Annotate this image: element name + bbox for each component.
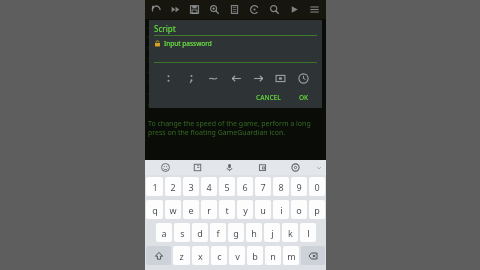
button[interactable]: 5: [219, 177, 235, 196]
button[interactable]: Menu: [304, 0, 324, 19]
staticText: 3: [188, 181, 194, 193]
staticText: T: [148, 78, 152, 86]
staticText: 8: [278, 181, 284, 193]
button[interactable]: h: [246, 223, 262, 242]
button[interactable]: e: [183, 200, 199, 219]
staticText: 6: [242, 181, 248, 193]
button[interactable]: Left: [228, 70, 244, 86]
staticText: u: [260, 204, 266, 216]
button[interactable]: List: [224, 0, 244, 19]
staticText: To change the speed of the game, perform…: [148, 119, 326, 137]
button[interactable]: x: [192, 246, 209, 265]
staticText: V: [148, 34, 152, 42]
button[interactable]: c: [211, 246, 227, 265]
button[interactable]: w: [165, 200, 181, 219]
button[interactable]: Stickers: [181, 160, 213, 175]
staticText: j: [271, 227, 274, 239]
button[interactable]: n: [265, 246, 281, 265]
button[interactable]: Colon: [160, 70, 176, 86]
staticText: l: [307, 227, 310, 239]
button[interactable]: 2: [165, 177, 181, 196]
button[interactable]: p: [309, 200, 325, 219]
button[interactable]: More: [312, 160, 326, 175]
button[interactable]: v: [229, 246, 245, 265]
button[interactable]: Fast forward: [166, 0, 185, 19]
staticText: s: [180, 227, 185, 239]
button[interactable]: f: [210, 223, 226, 242]
button[interactable]: CANCEL: [252, 92, 285, 103]
button[interactable]: r: [201, 200, 217, 219]
button[interactable]: k: [282, 223, 298, 242]
button[interactable]: 3: [183, 177, 199, 196]
staticText: 4: [206, 181, 212, 193]
button[interactable]: 1: [146, 177, 163, 196]
staticText: c: [217, 250, 222, 262]
staticText: w: [169, 204, 177, 216]
button[interactable]: z: [173, 246, 190, 265]
button[interactable]: Emoji: [149, 160, 181, 175]
button[interactable]: Settings: [279, 160, 312, 175]
staticText: 1: [152, 181, 158, 193]
button[interactable]: t: [219, 200, 235, 219]
staticText: e: [188, 204, 194, 216]
staticText: q: [152, 204, 158, 216]
button[interactable]: Semicolon: [183, 70, 199, 86]
button[interactable]: g: [228, 223, 244, 242]
button[interactable]: y: [237, 200, 253, 219]
staticText: o: [296, 204, 302, 216]
staticText: A: [148, 100, 152, 108]
button[interactable]: Save: [185, 0, 204, 19]
button[interactable]: Backspace: [301, 246, 325, 265]
button[interactable]: 8: [273, 177, 289, 196]
button[interactable]: d: [192, 223, 208, 242]
staticText: h: [251, 227, 257, 239]
button[interactable]: a: [156, 223, 172, 242]
staticText: 9: [296, 181, 302, 193]
button[interactable]: History: [295, 70, 311, 86]
button[interactable]: Refresh: [244, 0, 264, 19]
button[interactable]: Clipboard: [246, 160, 279, 175]
button[interactable]: 7: [255, 177, 271, 196]
button[interactable]: Select: [272, 70, 288, 86]
button[interactable]: j: [264, 223, 280, 242]
button[interactable]: b: [247, 246, 263, 265]
staticText: OK: [299, 93, 309, 102]
staticText: V: [148, 45, 152, 53]
staticText: A: [148, 23, 152, 31]
button[interactable]: o: [291, 200, 307, 219]
staticText: i: [280, 204, 283, 216]
button[interactable]: Right: [250, 70, 266, 86]
staticText: Script: [154, 23, 176, 34]
button[interactable]: Search: [264, 0, 284, 19]
button[interactable]: Shift: [146, 246, 171, 265]
staticText: g: [233, 227, 239, 239]
staticText: a: [161, 227, 167, 239]
button[interactable]: l: [300, 223, 316, 242]
button[interactable]: 9: [291, 177, 307, 196]
button[interactable]: u: [255, 200, 271, 219]
staticText: k: [288, 227, 293, 239]
button[interactable]: Voice input: [213, 160, 246, 175]
button[interactable]: Undo: [147, 0, 166, 19]
button[interactable]: m: [283, 246, 299, 265]
button[interactable]: Tilde: [205, 70, 221, 86]
button[interactable]: i: [273, 200, 289, 219]
staticText: 0: [314, 181, 320, 193]
button[interactable]: s: [174, 223, 190, 242]
button[interactable]: Search value: [204, 0, 224, 19]
staticText: f: [216, 227, 220, 239]
button[interactable]: 0: [309, 177, 325, 196]
staticText: p: [314, 204, 320, 216]
button[interactable]: q: [146, 200, 163, 219]
staticText: b: [252, 250, 258, 262]
button[interactable]: Run: [284, 0, 304, 19]
button[interactable]: 4: [201, 177, 217, 196]
staticText: m: [287, 250, 296, 262]
staticText: 5: [224, 181, 230, 193]
button[interactable]: 6: [237, 177, 253, 196]
button[interactable]: OK: [295, 92, 313, 103]
staticText: A: [148, 89, 152, 97]
staticText: x: [198, 250, 203, 262]
staticText: t: [225, 204, 229, 216]
staticText: v: [235, 250, 240, 262]
